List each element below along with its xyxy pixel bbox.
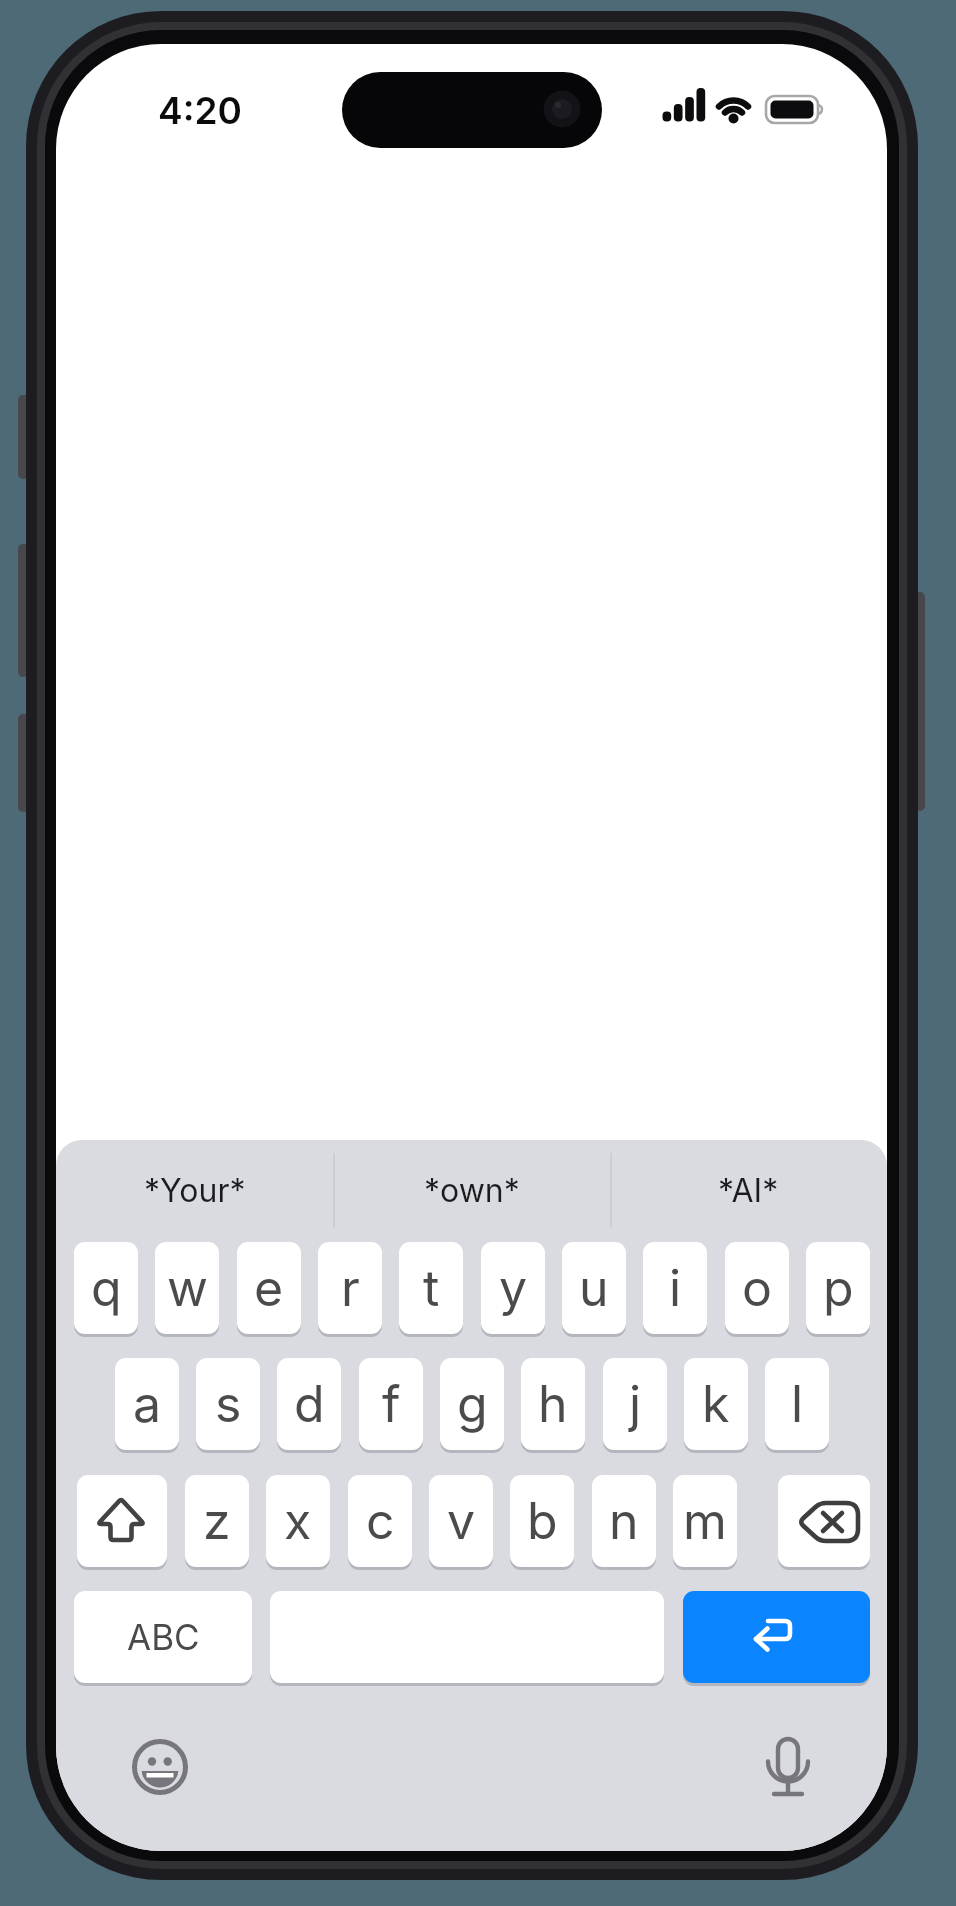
- staticText: b: [527, 1491, 558, 1551]
- button[interactable]: d: [277, 1358, 341, 1450]
- staticText: e: [254, 1258, 284, 1318]
- staticText: j: [629, 1374, 642, 1434]
- button[interactable]: q: [74, 1242, 138, 1334]
- button[interactable]: c: [348, 1475, 412, 1567]
- staticText: q: [91, 1258, 122, 1318]
- button[interactable]: b: [510, 1475, 574, 1567]
- staticText: r: [341, 1258, 360, 1318]
- staticText: *AI*: [718, 1171, 779, 1210]
- staticText: l: [791, 1374, 804, 1434]
- staticText: d: [294, 1374, 325, 1434]
- staticText: p: [823, 1258, 854, 1318]
- staticText: f: [382, 1374, 401, 1434]
- button[interactable]: [757, 1728, 819, 1802]
- staticText: n: [609, 1491, 639, 1551]
- staticText: z: [203, 1491, 231, 1551]
- button[interactable]: i: [643, 1242, 707, 1334]
- staticText: x: [284, 1491, 312, 1551]
- button[interactable]: *AI*: [610, 1144, 887, 1236]
- button[interactable]: r: [318, 1242, 382, 1334]
- staticText: s: [215, 1374, 242, 1434]
- staticText: v: [447, 1491, 476, 1551]
- button[interactable]: ABC: [74, 1591, 252, 1683]
- staticText: a: [133, 1374, 162, 1434]
- staticText: c: [366, 1491, 395, 1551]
- button[interactable]: a: [115, 1358, 179, 1450]
- button[interactable]: x: [266, 1475, 330, 1567]
- button[interactable]: [77, 1475, 167, 1567]
- staticText: i: [669, 1258, 682, 1318]
- button[interactable]: n: [592, 1475, 656, 1567]
- staticText: k: [702, 1374, 730, 1434]
- staticText: *Your*: [144, 1171, 246, 1210]
- staticText: m: [683, 1491, 727, 1551]
- button[interactable]: m: [673, 1475, 737, 1567]
- button[interactable]: [129, 1736, 191, 1798]
- staticText: 4:20: [158, 88, 242, 133]
- button[interactable]: o: [725, 1242, 789, 1334]
- button[interactable]: w: [155, 1242, 219, 1334]
- button[interactable]: e: [237, 1242, 301, 1334]
- button[interactable]: *Your*: [56, 1144, 333, 1236]
- staticText: u: [579, 1258, 609, 1318]
- staticText: y: [499, 1258, 528, 1318]
- button[interactable]: u: [562, 1242, 626, 1334]
- button[interactable]: t: [399, 1242, 463, 1334]
- button[interactable]: v: [429, 1475, 493, 1567]
- staticText: ABC: [127, 1616, 200, 1658]
- button[interactable]: y: [481, 1242, 545, 1334]
- staticText: t: [423, 1258, 440, 1318]
- button[interactable]: g: [440, 1358, 504, 1450]
- button[interactable]: [683, 1591, 870, 1683]
- button[interactable]: h: [521, 1358, 585, 1450]
- button[interactable]: k: [684, 1358, 748, 1450]
- staticText: g: [457, 1374, 488, 1434]
- button[interactable]: [778, 1475, 870, 1567]
- button[interactable]: *own*: [333, 1144, 610, 1236]
- button[interactable]: j: [603, 1358, 667, 1450]
- button[interactable]: l: [765, 1358, 829, 1450]
- button[interactable]: p: [806, 1242, 870, 1334]
- button[interactable]: s: [196, 1358, 260, 1450]
- button[interactable]: f: [359, 1358, 423, 1450]
- button[interactable]: z: [185, 1475, 249, 1567]
- staticText: *own*: [424, 1171, 520, 1210]
- staticText: h: [538, 1374, 568, 1434]
- staticText: o: [742, 1258, 772, 1318]
- staticText: w: [167, 1258, 208, 1318]
